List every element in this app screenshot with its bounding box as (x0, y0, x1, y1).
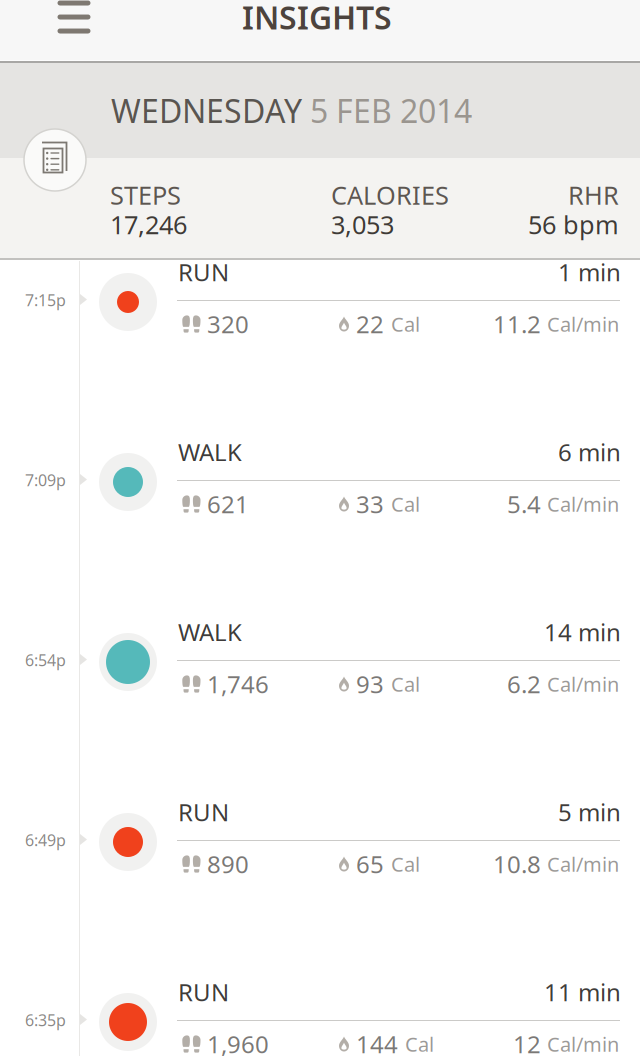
staticText: Cal (391, 851, 420, 877)
staticText: Cal/min (547, 851, 619, 877)
staticText: Cal (391, 311, 420, 337)
staticText: 3,053 (331, 208, 394, 241)
staticText: 11 min (544, 976, 621, 1008)
staticText: INSIGHTS (242, 0, 392, 38)
button[interactable]: 6:54p (0, 621, 640, 801)
staticText: 65 (356, 848, 384, 880)
staticText: 6.2 (507, 668, 541, 700)
staticText: 320 (207, 308, 249, 340)
button[interactable]: Menu (45, 0, 103, 34)
button[interactable]: 6:49p (0, 801, 640, 981)
staticText: 12 (513, 1028, 541, 1056)
staticText: Cal/min (547, 491, 619, 517)
staticText: 144 (356, 1028, 398, 1056)
staticText: 6 min (558, 436, 621, 468)
staticText: 93 (356, 668, 384, 700)
staticText: 6:35p (25, 1009, 66, 1031)
staticText: 890 (207, 848, 249, 880)
staticText: 56 bpm (528, 208, 619, 241)
staticText: Cal/min (547, 311, 619, 337)
staticText: 14 min (544, 616, 621, 648)
staticText: WALK (178, 616, 242, 648)
staticText: Cal (391, 671, 420, 697)
staticText: Cal (405, 1031, 434, 1056)
staticText: 22 (356, 308, 384, 340)
staticText: CALORIES (331, 178, 449, 212)
button[interactable]: 7:09p (0, 441, 640, 621)
staticText: 5 min (558, 796, 621, 828)
staticText: 33 (356, 488, 384, 520)
staticText: 10.8 (493, 848, 541, 880)
staticText: 5 FEB 2014 (302, 89, 472, 132)
staticText: Cal/min (547, 671, 619, 697)
staticText: 7:15p (25, 289, 66, 311)
staticText: RUN (178, 256, 229, 288)
staticText: 621 (207, 488, 249, 520)
staticText: 6:54p (25, 649, 66, 671)
staticText: RUN (178, 796, 229, 828)
staticText: 17,246 (110, 208, 187, 241)
staticText: Cal/min (547, 1031, 619, 1056)
staticText: STEPS (110, 178, 181, 212)
button[interactable]: Journal (24, 129, 86, 191)
staticText: 1,746 (207, 668, 269, 700)
staticText: RHR (568, 178, 619, 212)
button[interactable]: 7:15p (0, 261, 640, 441)
staticText: 1 min (558, 256, 621, 288)
staticText: Cal (391, 491, 420, 517)
staticText: 6:49p (25, 829, 66, 851)
staticText: WALK (178, 436, 242, 468)
staticText: 1,960 (207, 1028, 269, 1056)
staticText: 7:09p (25, 469, 66, 491)
staticText: 5.4 (507, 488, 541, 520)
button[interactable]: 6:35p (0, 981, 640, 1056)
staticText: WEDNESDAY (111, 89, 302, 132)
staticText: RUN (178, 976, 229, 1008)
staticText: 11.2 (493, 308, 541, 340)
